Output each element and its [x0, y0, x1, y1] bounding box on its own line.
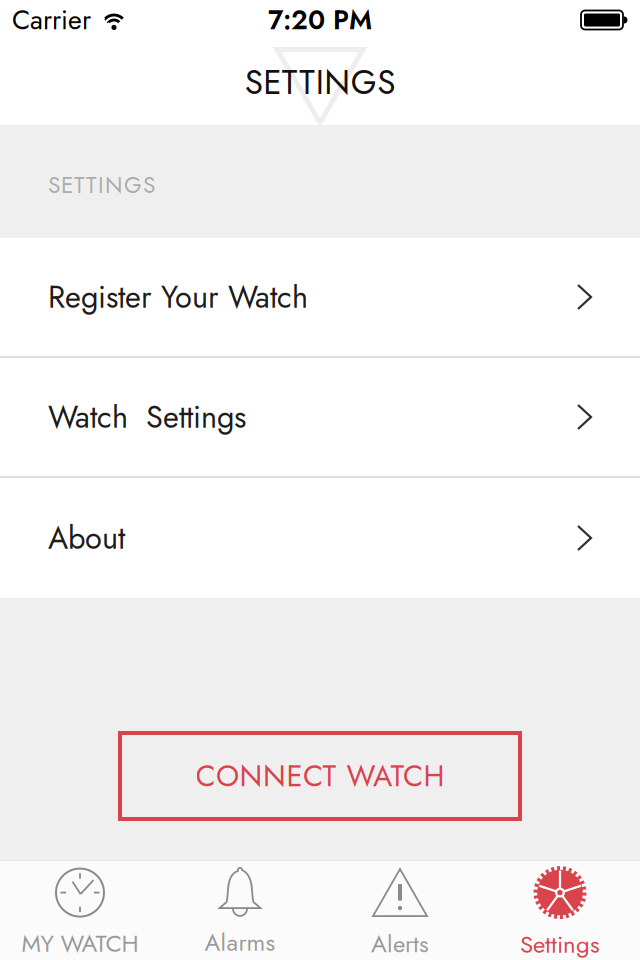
- staticText: SETTINGS: [48, 169, 155, 201]
- staticText: SETTINGS: [245, 59, 395, 106]
- button[interactable]: MY WATCH: [0, 861, 160, 960]
- staticText: Settings: [520, 928, 600, 960]
- staticText: About: [48, 516, 125, 560]
- staticText: MY WATCH: [21, 927, 138, 960]
- button[interactable]: About: [0, 478, 640, 598]
- staticText: Carrier: [12, 1, 91, 39]
- staticText: Register Your Watch: [48, 275, 308, 319]
- staticText: CONNECT WATCH: [195, 755, 444, 797]
- button[interactable]: Watch Settings: [0, 358, 640, 476]
- button[interactable]: Register Your Watch: [0, 238, 640, 356]
- button[interactable]: Alarms: [160, 861, 320, 960]
- staticText: Alarms: [204, 926, 275, 959]
- staticText: 7:20 PM: [268, 1, 372, 39]
- staticText: Watch Settings: [48, 395, 246, 439]
- staticText: Alerts: [371, 927, 429, 960]
- button[interactable]: Alerts: [320, 861, 480, 960]
- button[interactable]: CONNECT WATCH: [120, 733, 520, 819]
- button[interactable]: Settings: [480, 861, 640, 960]
